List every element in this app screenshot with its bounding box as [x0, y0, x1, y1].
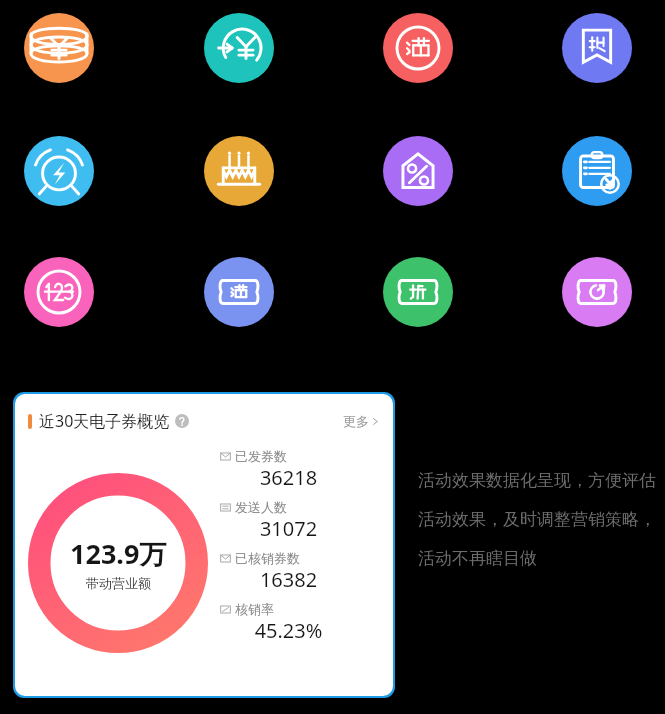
button[interactable]: 已发券数 [220, 448, 385, 491]
staticText: 更多 [343, 413, 369, 429]
button[interactable]: 核销率 [220, 601, 385, 644]
staticText: 发送人数 [235, 499, 287, 515]
button[interactable]: Redeem [562, 257, 632, 327]
button[interactable]: Cash coupon [24, 13, 94, 83]
button[interactable]: 近30天电子券概览 [15, 394, 393, 696]
staticText: 活动效果数据化呈现，方便评估活动效果，及时调整营销策略，活动不再瞎目做 [418, 470, 658, 569]
button[interactable]: 更多 [343, 413, 380, 429]
button[interactable]: Order form [562, 136, 632, 206]
button[interactable]: Price cut [24, 257, 94, 327]
button[interactable]: 发送人数 [220, 499, 385, 542]
staticText: 近30天电子券概览 [39, 410, 170, 432]
staticText: 带动营业额 [86, 575, 151, 591]
staticText: 核销率 [235, 601, 274, 617]
staticText: 45.23% [220, 617, 357, 644]
button[interactable]: Help [175, 414, 189, 428]
button[interactable]: Birthday gift [204, 136, 274, 206]
staticText: 36218 [220, 464, 357, 491]
button[interactable]: Cash back [204, 13, 274, 83]
staticText: 已核销券数 [235, 550, 300, 566]
button[interactable]: Reduction [562, 13, 632, 83]
staticText: 123.9万 [70, 535, 167, 572]
button[interactable]: Discount ticket [383, 257, 453, 327]
button[interactable]: 已核销券数 [220, 550, 385, 593]
staticText: 31072 [220, 515, 357, 542]
button[interactable]: Full discount [383, 13, 453, 83]
button[interactable]: Full ticket [204, 257, 274, 327]
button[interactable]: Percent off [383, 136, 453, 206]
staticText: 16382 [220, 566, 357, 593]
staticText: 已发券数 [235, 448, 287, 464]
button[interactable]: Flash sale [24, 136, 94, 206]
